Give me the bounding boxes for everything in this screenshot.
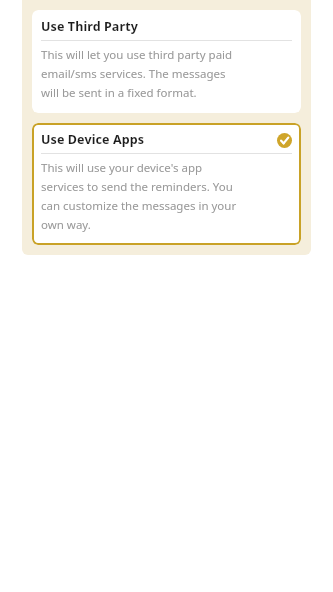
staticText: This will use your device's app — [41, 160, 292, 176]
staticText: Use Third Party — [41, 18, 292, 35]
staticText: own way. — [41, 217, 292, 233]
staticText: Use Device Apps — [41, 131, 276, 148]
button[interactable]: Selected — [276, 132, 292, 148]
staticText: This will let you use third party paid — [41, 47, 292, 63]
staticText: email/sms services. The messages — [41, 66, 292, 82]
staticText: will be sent in a fixed format. — [41, 85, 292, 101]
staticText: services to send the reminders. You — [41, 179, 292, 195]
button[interactable]: Use Third Party — [32, 10, 301, 113]
staticText: can customize the messages in your — [41, 198, 292, 214]
button[interactable]: Use Device Apps — [32, 123, 301, 245]
